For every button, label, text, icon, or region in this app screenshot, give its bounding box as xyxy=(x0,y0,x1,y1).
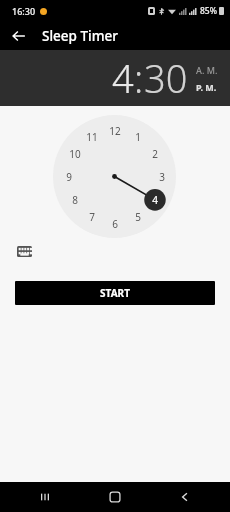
staticText: 8 xyxy=(72,193,78,207)
staticText: 2 xyxy=(152,147,158,161)
staticText: 3 xyxy=(159,170,165,184)
staticText: 10 xyxy=(69,147,81,161)
staticText: Sleep Timer xyxy=(42,27,118,45)
button[interactable]: Recent apps xyxy=(28,482,62,512)
staticText: 7 xyxy=(89,210,95,224)
button[interactable]: Back xyxy=(168,482,202,512)
staticText: 11 xyxy=(86,130,98,144)
button[interactable]: Clock face, 4 o'clock selected xyxy=(53,115,176,238)
staticText: 9 xyxy=(66,170,72,184)
staticText: 1 xyxy=(135,130,141,144)
button[interactable]: 4 xyxy=(112,52,134,104)
staticText: : xyxy=(134,52,144,104)
staticText: 12 xyxy=(109,124,121,138)
button[interactable]: P. M. xyxy=(196,81,217,93)
staticText: 6 xyxy=(112,217,118,231)
button[interactable]: A. M. xyxy=(196,64,218,76)
staticText: 85% xyxy=(200,5,217,17)
button[interactable]: Home xyxy=(98,482,132,512)
button[interactable]: Switch to keyboard input xyxy=(12,239,36,263)
button[interactable]: 30 xyxy=(144,52,188,104)
staticText: 4 xyxy=(152,193,158,207)
button[interactable]: Back xyxy=(7,24,31,48)
button[interactable]: START xyxy=(15,281,215,305)
staticText: 5 xyxy=(135,210,141,224)
staticText: 16:30 xyxy=(12,5,36,17)
staticText: START xyxy=(100,286,130,300)
